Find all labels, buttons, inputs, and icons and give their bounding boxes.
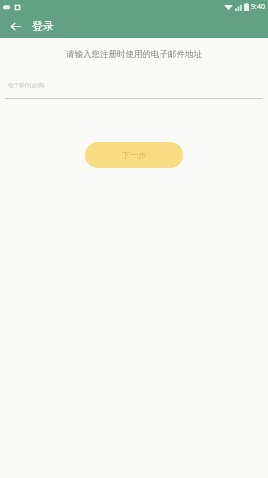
staticText: 9:40 — [251, 2, 265, 12]
button[interactable]: 电子邮件(必填) — [0, 81, 268, 99]
staticText: 电子邮件(必填) — [8, 81, 45, 89]
staticText: 下一步 — [122, 150, 146, 160]
staticText: 登录 — [32, 19, 54, 33]
staticText: 请输入您注册时使用的电子邮件地址 — [66, 49, 202, 60]
button[interactable]: Back — [4, 15, 26, 37]
button[interactable]: 下一步 — [85, 142, 183, 168]
